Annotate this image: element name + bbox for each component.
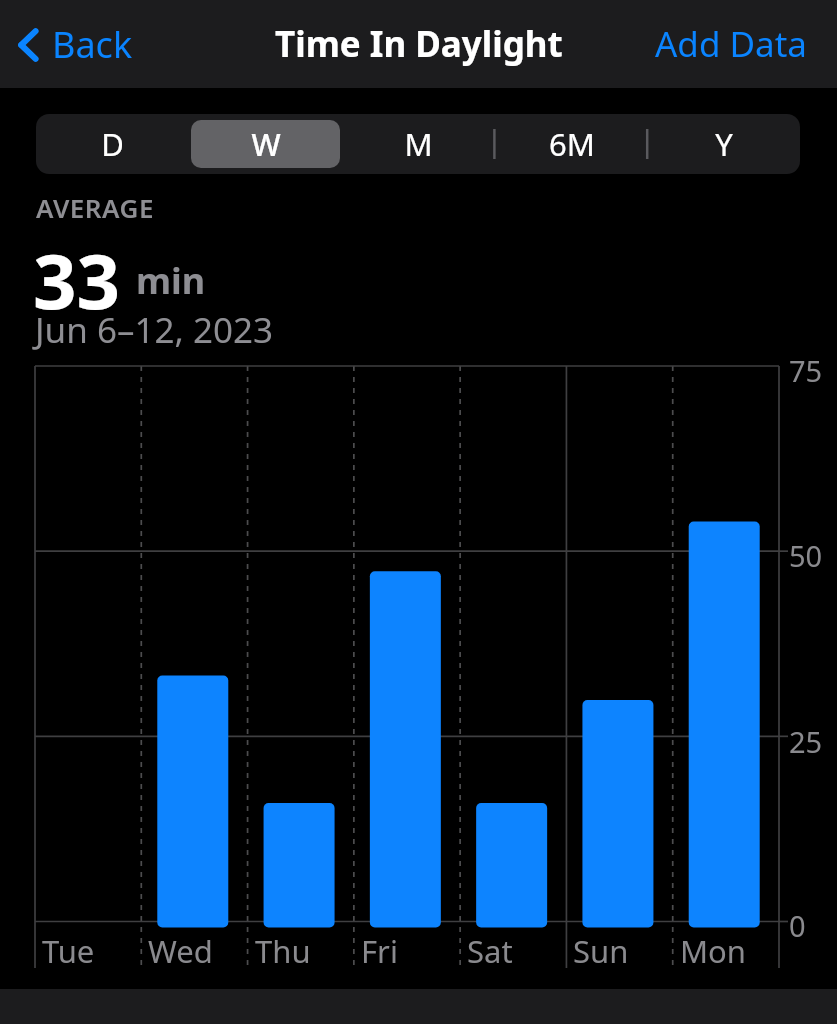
staticText: AVERAGE xyxy=(36,190,154,225)
staticText: 0 xyxy=(789,906,806,945)
staticText: 25 xyxy=(789,722,823,761)
button[interactable]: 6M xyxy=(497,120,646,168)
staticText: Mon xyxy=(680,930,747,972)
staticText: W xyxy=(251,123,281,165)
button[interactable]: Y xyxy=(650,120,798,168)
staticText: 75 xyxy=(789,351,823,390)
staticText: Time In Daylight xyxy=(275,20,563,68)
staticText: 6M xyxy=(549,123,595,165)
staticText: Y xyxy=(715,123,733,165)
staticText: Jun 6–12, 2023 xyxy=(35,306,274,354)
button[interactable]: M xyxy=(344,120,493,168)
staticText: Fri xyxy=(361,930,398,972)
staticText: D xyxy=(101,123,124,165)
button[interactable]: W xyxy=(191,120,340,168)
staticText: M xyxy=(404,123,433,165)
button[interactable]: Back xyxy=(8,14,143,75)
staticText: Thu xyxy=(255,930,311,972)
staticText: Back xyxy=(52,20,133,69)
staticText: Sun xyxy=(573,930,629,972)
staticText: Tue xyxy=(42,930,95,972)
staticText: 33 xyxy=(33,228,120,332)
staticText: 50 xyxy=(789,536,823,575)
button[interactable]: Add Data xyxy=(647,14,815,74)
staticText: Sat xyxy=(467,930,513,972)
staticText: Wed xyxy=(148,930,213,972)
staticText: min xyxy=(136,256,206,305)
button[interactable]: D xyxy=(38,120,187,168)
staticText: Add Data xyxy=(655,20,807,68)
